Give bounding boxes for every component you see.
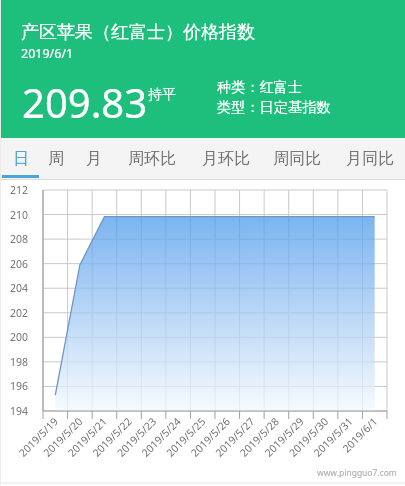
staticText: 周环比 <box>128 149 176 169</box>
button[interactable]: 月环比 <box>191 138 261 179</box>
button[interactable]: 月 <box>74 138 114 179</box>
button[interactable]: 周同比 <box>262 138 332 179</box>
staticText: 209.83 <box>22 75 148 129</box>
staticText: 月 <box>86 149 102 169</box>
staticText: 产区苹果（红富士）价格指数 <box>21 21 255 44</box>
staticText: 周同比 <box>273 149 321 169</box>
staticText: 2019/6/1 <box>21 45 74 62</box>
button[interactable]: 周环比 <box>123 138 181 179</box>
button[interactable]: 月同比 <box>335 138 405 179</box>
staticText: 持平 <box>148 86 176 104</box>
staticText: 月同比 <box>346 149 394 169</box>
button[interactable]: 日 <box>2 138 39 179</box>
button[interactable]: 周 <box>37 138 74 179</box>
staticText: 类型：日定基指数 <box>217 98 331 116</box>
staticText: 月环比 <box>202 149 250 169</box>
staticText: 周 <box>48 149 64 169</box>
staticText: 种类：红富士 <box>217 78 303 96</box>
staticText: 日 <box>13 149 29 169</box>
